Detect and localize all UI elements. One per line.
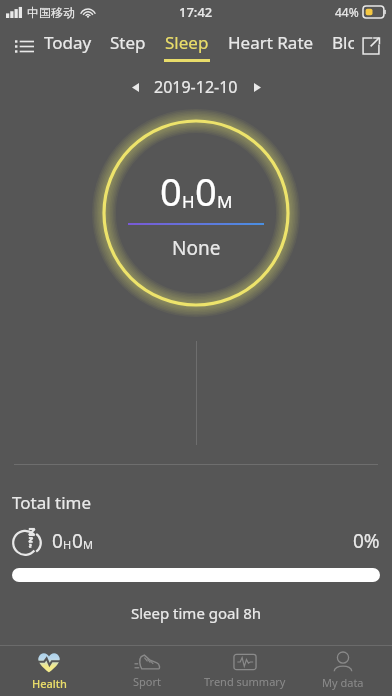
button[interactable]: Bloc: [332, 31, 366, 62]
button[interactable]: 2019-12-10: [154, 76, 238, 98]
button[interactable]: Next day: [244, 74, 270, 100]
button[interactable]: Previous day: [122, 74, 148, 100]
staticText: 44%: [335, 4, 359, 20]
staticText: Trend summary: [204, 674, 286, 689]
button[interactable]: Share: [354, 29, 388, 63]
staticText: Sleep time goal 8h: [0, 603, 392, 623]
staticText: 中国移动: [27, 5, 75, 20]
staticText: H: [63, 537, 72, 552]
button[interactable]: Sport: [98, 646, 196, 696]
staticText: Total time: [12, 491, 92, 514]
staticText: Bloc: [332, 31, 366, 54]
staticText: 0: [52, 528, 63, 554]
staticText: 0%: [353, 528, 380, 554]
button[interactable]: Trend summary: [196, 646, 294, 696]
button[interactable]: Today: [44, 31, 92, 62]
staticText: Sleep: [165, 31, 209, 54]
button[interactable]: Sleep: [164, 31, 210, 62]
staticText: Step: [110, 31, 146, 54]
button[interactable]: Health: [0, 646, 98, 696]
button[interactable]: My data: [294, 646, 392, 696]
staticText: 17:42: [179, 3, 213, 21]
staticText: 0: [195, 165, 217, 217]
staticText: 0: [160, 165, 182, 217]
staticText: Heart Rate: [228, 31, 314, 54]
staticText: My data: [322, 675, 364, 690]
staticText: 0: [72, 528, 83, 554]
staticText: M: [83, 537, 93, 552]
button[interactable]: Menu: [6, 28, 42, 64]
staticText: H: [182, 190, 195, 213]
staticText: None: [172, 235, 221, 261]
staticText: M: [217, 190, 233, 213]
button[interactable]: Heart Rate: [228, 31, 314, 62]
button[interactable]: Step: [110, 31, 146, 62]
staticText: Today: [44, 31, 92, 54]
staticText: Health: [32, 676, 67, 691]
staticText: Sport: [133, 674, 161, 689]
